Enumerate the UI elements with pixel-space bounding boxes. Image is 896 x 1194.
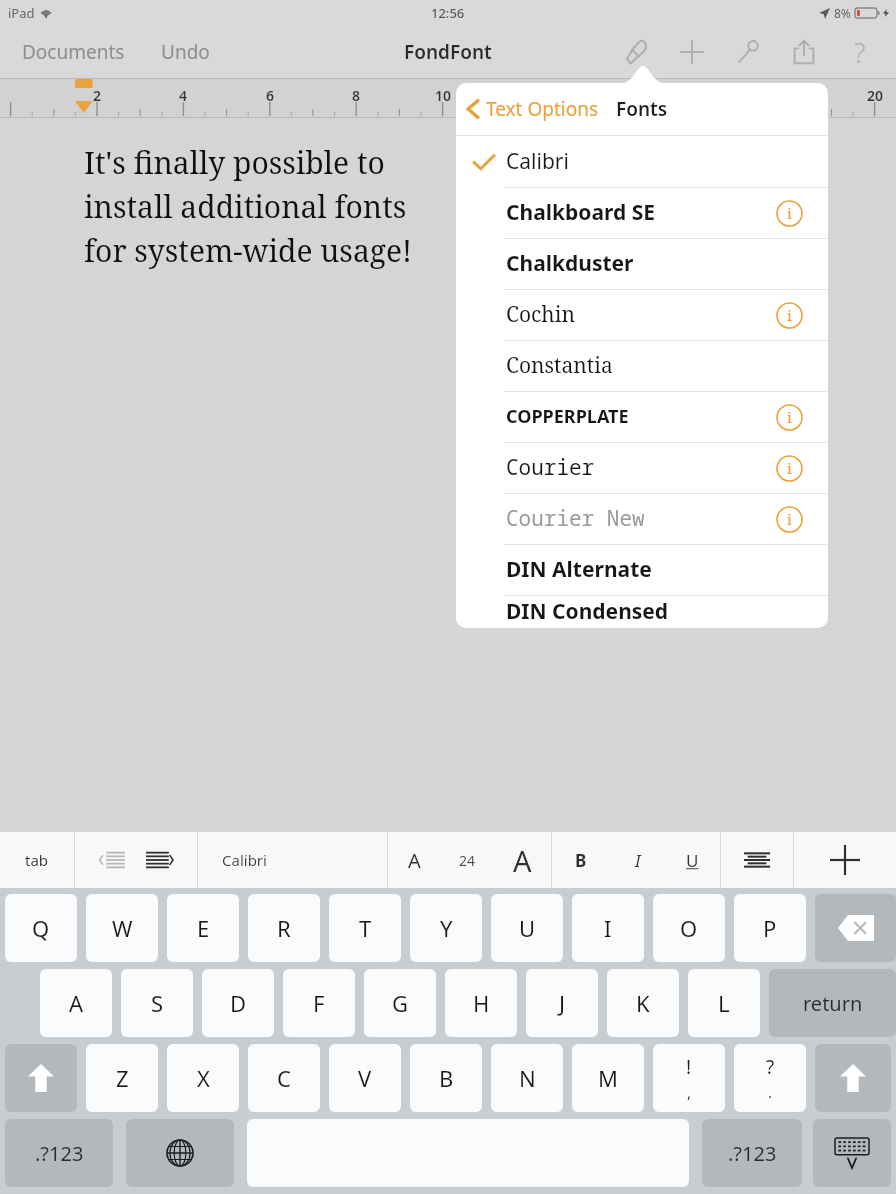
button[interactable]: Info about Courier [772, 451, 806, 485]
button[interactable]: K [607, 969, 679, 1037]
button[interactable]: Add [794, 832, 896, 888]
button[interactable]: Courier New [456, 493, 828, 544]
staticText: D [230, 988, 247, 1018]
button[interactable]: Shift [815, 1044, 891, 1112]
button[interactable]: Y [410, 894, 482, 962]
button[interactable]: R [248, 894, 320, 962]
button[interactable]: ! [653, 1044, 725, 1112]
button[interactable]: Backspace [815, 894, 896, 962]
button[interactable]: I [610, 832, 665, 888]
staticText: A [69, 988, 84, 1018]
staticText: L [718, 988, 730, 1018]
button[interactable]: Q [5, 894, 77, 962]
staticText: E [197, 913, 210, 943]
button[interactable]: Undo [157, 33, 214, 71]
button[interactable]: Calibri [456, 136, 828, 187]
staticText: Documents [22, 39, 125, 65]
staticText: 6 [266, 86, 275, 105]
staticText: 2 [93, 86, 102, 105]
staticText: i [787, 509, 792, 529]
staticText: M [598, 1063, 618, 1093]
button[interactable]: A [388, 832, 441, 888]
button[interactable]: Cochin [456, 289, 828, 340]
button[interactable]: F [283, 969, 355, 1037]
staticText: for system-wide usage! [84, 230, 412, 271]
button[interactable]: G [364, 969, 436, 1037]
button[interactable]: Help [832, 26, 888, 78]
button[interactable] [75, 832, 197, 888]
button[interactable]: C [248, 1044, 320, 1112]
staticText: i [787, 407, 792, 427]
button[interactable]: Text Options [466, 96, 599, 122]
button[interactable]: Change language [126, 1119, 234, 1187]
button[interactable]: M [572, 1044, 644, 1112]
button[interactable]: U [665, 832, 720, 888]
button[interactable]: Info about Cochin [772, 298, 806, 332]
staticText: 8% [834, 5, 851, 21]
staticText: 8 [352, 86, 361, 105]
staticText: DIN Alternate [506, 555, 652, 584]
button[interactable]: P [734, 894, 806, 962]
button[interactable]: DIN Condensed [456, 595, 828, 628]
button[interactable]: Courier [456, 442, 828, 493]
button[interactable]: 24 [441, 832, 493, 888]
button[interactable]: B [410, 1044, 482, 1112]
button[interactable]: X [167, 1044, 239, 1112]
button[interactable]: J [526, 969, 598, 1037]
button[interactable]: S [121, 969, 193, 1037]
button[interactable]: W [86, 894, 158, 962]
button[interactable]: L [688, 969, 760, 1037]
button[interactable]: A [493, 832, 551, 888]
button[interactable]: COPPERPLATE [456, 391, 828, 442]
staticText: Chalkduster [506, 249, 634, 278]
staticText: X [197, 1063, 210, 1093]
staticText: i [787, 305, 792, 325]
staticText: F [313, 988, 325, 1018]
button[interactable]: .?123 [5, 1119, 113, 1187]
button[interactable]: N [491, 1044, 563, 1112]
button[interactable]: I [572, 894, 644, 962]
staticText: .?123 [35, 1140, 84, 1167]
button[interactable]: V [329, 1044, 401, 1112]
button[interactable]: Tools [720, 26, 776, 78]
button[interactable]: A [40, 969, 112, 1037]
button[interactable]: Info about Courier New [772, 502, 806, 536]
staticText: 20 [867, 86, 884, 105]
button[interactable]: B [552, 832, 610, 888]
button[interactable]: Hide keyboard [813, 1119, 891, 1187]
button[interactable]: ? [734, 1044, 806, 1112]
button[interactable]: Info about COPPERPLATE [772, 400, 806, 434]
button[interactable]: .?123 [702, 1119, 802, 1187]
button[interactable]: H [445, 969, 517, 1037]
staticText: B [439, 1063, 454, 1093]
button[interactable]: Documents [18, 33, 129, 71]
button[interactable]: tab [0, 832, 74, 888]
button[interactable]: Shift [5, 1044, 77, 1112]
staticText: J [559, 988, 566, 1018]
button[interactable]: Chalkboard SE [456, 187, 828, 238]
button[interactable]: Insert [664, 26, 720, 78]
button[interactable]: Z [86, 1044, 158, 1112]
button[interactable]: Constantia [456, 340, 828, 391]
button[interactable]: E [167, 894, 239, 962]
staticText: K [636, 988, 650, 1018]
staticText: Courier New [506, 504, 645, 533]
button[interactable]: Share [776, 26, 832, 78]
button[interactable]: Calibri [198, 832, 387, 888]
staticText: COPPERPLATE [506, 404, 629, 429]
button[interactable]: Info about Chalkboard SE [772, 196, 806, 230]
staticText: DIN Condensed [506, 597, 669, 626]
button[interactable]: O [653, 894, 725, 962]
button[interactable]: Brush [608, 26, 664, 78]
button[interactable]: Chalkduster [456, 238, 828, 289]
staticText: i [787, 458, 792, 478]
staticText: 4 [179, 86, 188, 105]
button[interactable]: U [491, 894, 563, 962]
button[interactable]: DIN Alternate [456, 544, 828, 595]
button[interactable]: return [769, 969, 896, 1037]
staticText: P [763, 913, 777, 943]
button[interactable] [721, 832, 793, 888]
button[interactable]: D [202, 969, 274, 1037]
button[interactable]: T [329, 894, 401, 962]
